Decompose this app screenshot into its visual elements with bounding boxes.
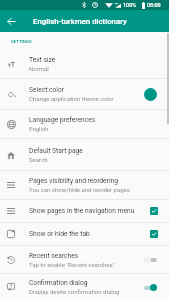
button[interactable]: Show or hide the tab: [0, 223, 169, 245]
staticText: Change application theme color: [29, 95, 114, 102]
staticText: Text size: [29, 56, 56, 64]
staticText: Show or hide the tab: [29, 230, 150, 238]
button[interactable]: Language preferences: [0, 110, 169, 138]
button[interactable]: Back: [0, 10, 22, 32]
button[interactable]: Text size: [0, 50, 169, 78]
button[interactable]: Confirmation dialog: [0, 274, 169, 300]
button[interactable]: Pages visibility and reordering: [0, 171, 169, 199]
staticText: SETTINGS: [11, 39, 32, 44]
button[interactable]: Show pages in the navigation menu: [0, 200, 169, 222]
button[interactable]: Default Start page: [0, 139, 169, 170]
staticText: Recent searches: [29, 252, 79, 260]
staticText: Display delete confirmation dialog: [29, 288, 120, 295]
button[interactable]: Recent searches: [0, 246, 169, 273]
staticText: Default Start page: [29, 147, 83, 155]
staticText: Tap to enable "Recent searches": [29, 261, 115, 268]
staticText: English: [29, 125, 49, 132]
staticText: Pages visibility and reordering: [29, 177, 119, 185]
staticText: 100%: [123, 2, 137, 8]
button[interactable]: Select color: [0, 79, 169, 109]
staticText: Normal: [29, 65, 49, 72]
staticText: Show pages in the navigation menu: [29, 207, 150, 215]
staticText: 08:00: [147, 2, 161, 8]
staticText: Search: [29, 156, 48, 163]
staticText: Language preferences: [29, 116, 96, 124]
staticText: You can show/hide and reorder pages: [29, 186, 130, 193]
staticText: Confirmation dialog: [29, 279, 88, 287]
staticText: Select color: [29, 86, 65, 94]
staticText: English-turkmen dictionary: [33, 17, 127, 26]
